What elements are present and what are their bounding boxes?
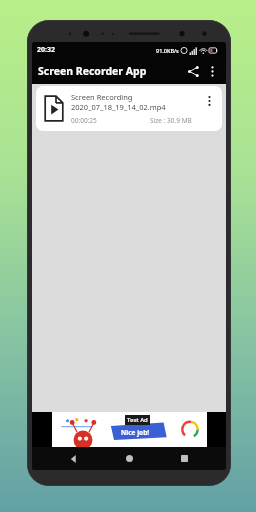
staticText: Size : 30.9 MB xyxy=(150,116,192,125)
staticText: 20:32 xyxy=(37,45,55,55)
button[interactable]: Item options xyxy=(202,96,216,122)
button[interactable]: Advertisement xyxy=(32,412,226,447)
button[interactable]: Share xyxy=(183,61,203,81)
button[interactable]: More options xyxy=(203,62,221,80)
staticText: 2020_07_18_19_14_02.mp4 xyxy=(71,102,166,112)
button[interactable]: Back xyxy=(61,447,87,470)
button[interactable]: Home xyxy=(116,447,142,470)
button[interactable]: Recent apps xyxy=(171,447,197,470)
staticText: 91.0KB/s xyxy=(156,47,179,54)
button[interactable]: Screen Recording xyxy=(36,86,222,131)
staticText: Screen Recorder App xyxy=(38,64,147,78)
staticText: Test Ad xyxy=(127,416,148,424)
staticText: Nice job! xyxy=(121,428,150,437)
staticText: Screen Recording xyxy=(71,92,133,102)
staticText: 00:00:25 xyxy=(71,116,97,125)
